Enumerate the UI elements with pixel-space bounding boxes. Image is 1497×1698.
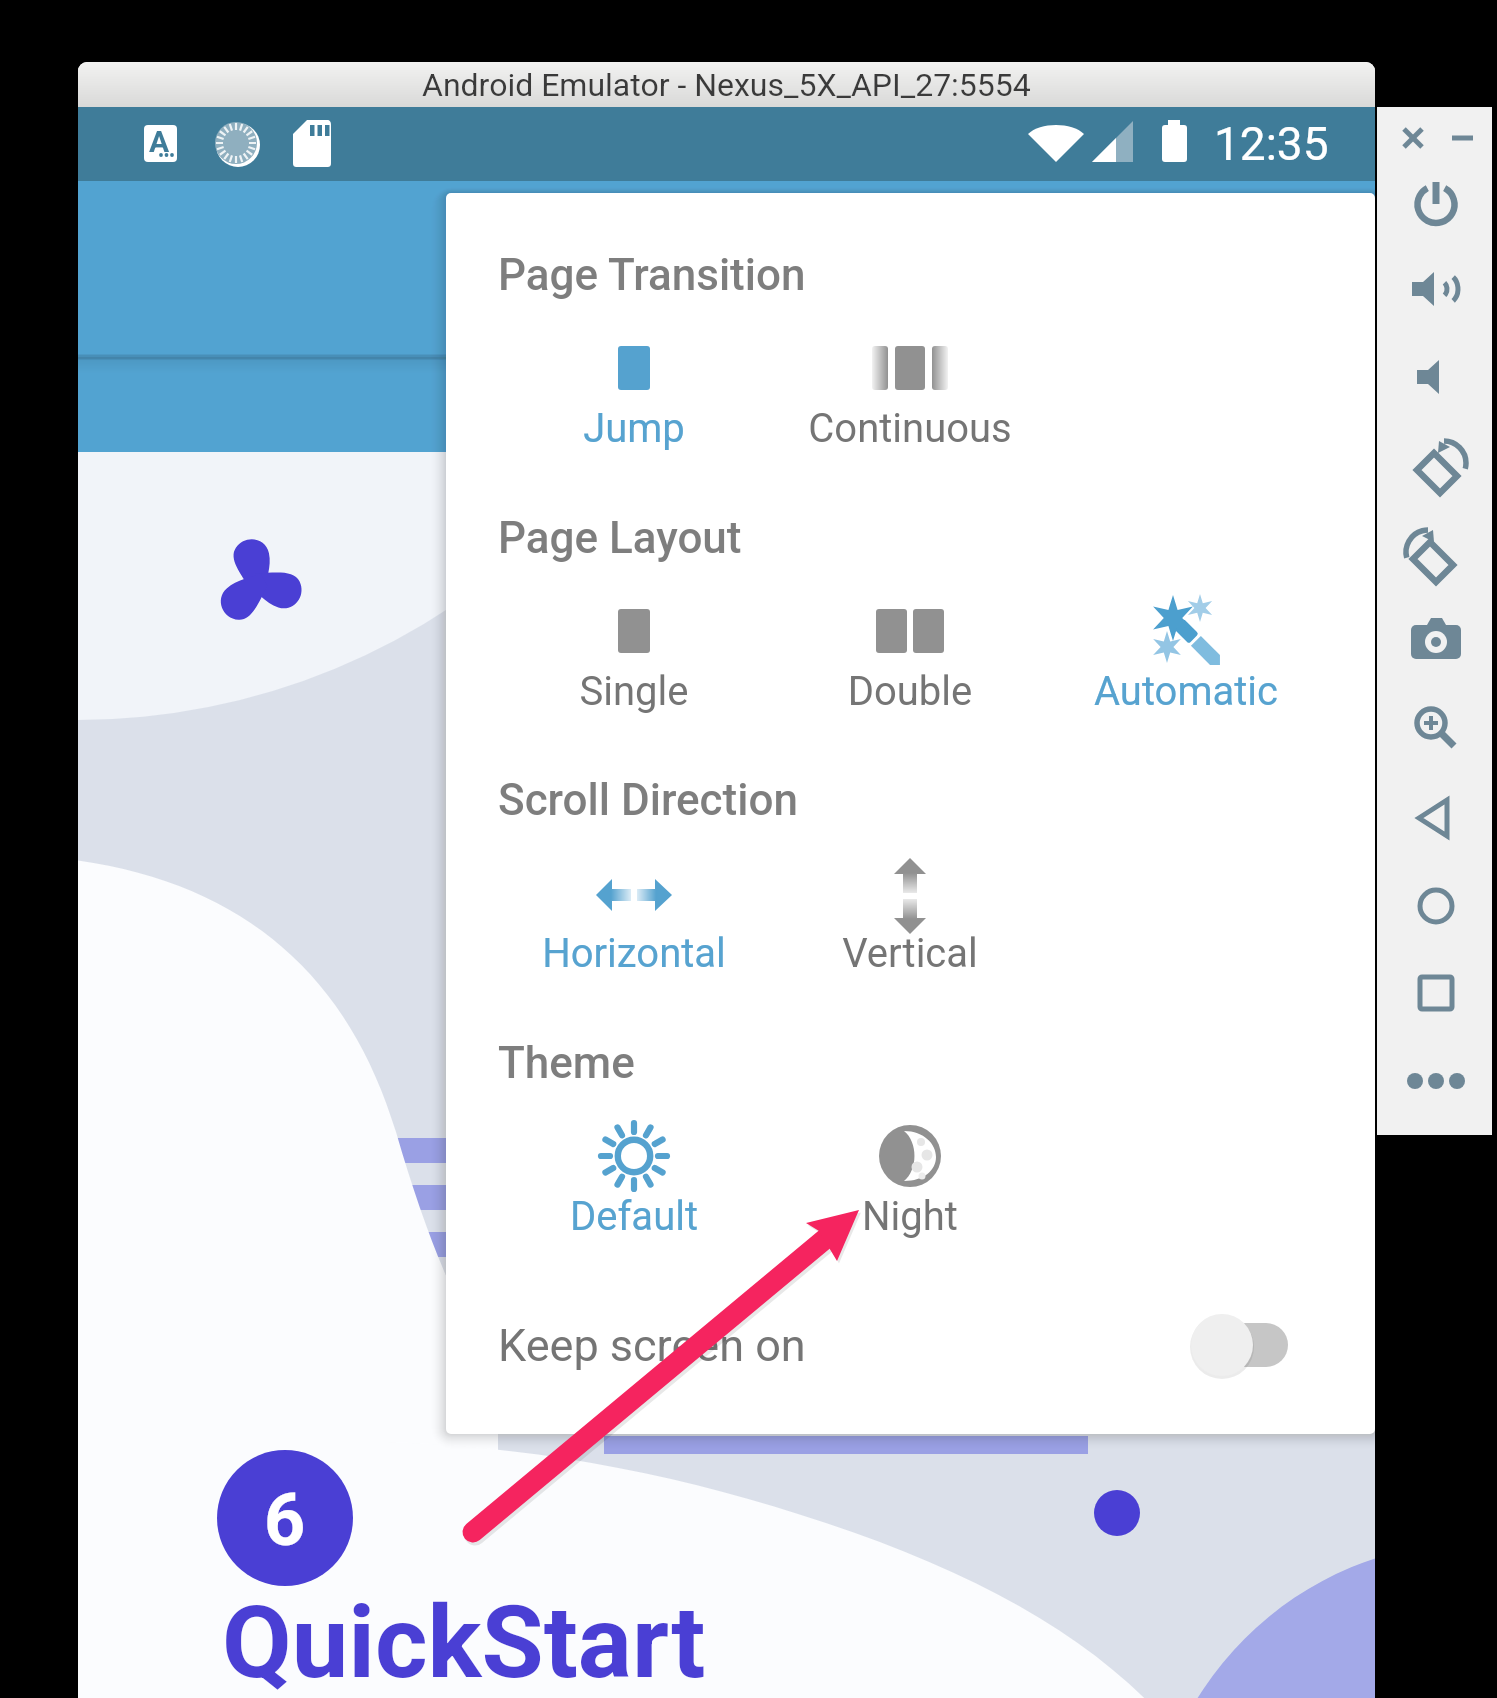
button[interactable]: Single: [509, 571, 759, 711]
staticText: Night: [785, 1193, 1035, 1240]
staticText: Scroll Direction: [498, 774, 798, 826]
staticText: Default: [509, 1193, 759, 1240]
button[interactable]: Continuous: [785, 308, 1035, 448]
staticText: Vertical: [785, 930, 1035, 977]
staticText: Page Layout: [498, 512, 742, 564]
button[interactable]: Night: [785, 1096, 1035, 1236]
staticText: Jump: [509, 405, 759, 452]
staticText: Horizontal: [509, 930, 759, 977]
staticText: Page Transition: [498, 249, 806, 301]
staticText: Theme: [498, 1037, 635, 1089]
staticText: Single: [509, 668, 759, 715]
staticText: Keep screen on: [498, 1319, 806, 1372]
button[interactable]: Jump: [509, 308, 759, 448]
staticText: Automatic: [1061, 668, 1311, 715]
button[interactable]: Keep screen on: [446, 1300, 1375, 1390]
staticText: 6: [264, 1478, 306, 1562]
button[interactable]: Default: [509, 1096, 759, 1236]
button[interactable]: Horizontal: [509, 833, 759, 973]
staticText: Double: [785, 668, 1035, 715]
button[interactable]: Automatic: [1061, 571, 1311, 711]
button[interactable]: Vertical: [785, 833, 1035, 973]
button[interactable]: Double: [785, 571, 1035, 711]
staticText: Continuous: [785, 405, 1035, 452]
staticText: 12:35: [1214, 117, 1329, 171]
staticText: Android Emulator - Nexus_5X_API_27:5554: [422, 66, 1031, 104]
staticText: A: [149, 124, 170, 159]
staticText: QuickStart: [222, 1583, 706, 1698]
